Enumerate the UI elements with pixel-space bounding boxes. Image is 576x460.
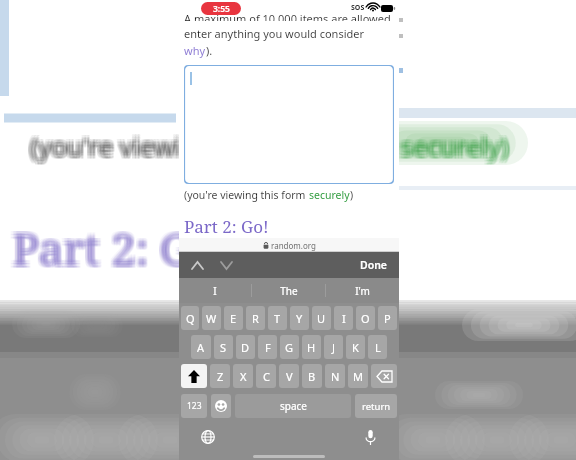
- staticText: P: [384, 311, 391, 326]
- staticText: Part 2: Go!: [12, 218, 232, 278]
- button[interactable]: K: [346, 335, 365, 359]
- button[interactable]: S: [214, 335, 233, 359]
- button[interactable]: Done: [357, 255, 391, 275]
- staticText: V: [286, 369, 293, 384]
- button[interactable]: I'm: [326, 278, 399, 303]
- staticText: enter anything you would consider confid: [184, 26, 394, 41]
- staticText: securely): [400, 130, 509, 165]
- staticText: 3:55: [213, 3, 230, 15]
- button[interactable]: N: [325, 364, 345, 388]
- button[interactable]: [184, 65, 394, 184]
- staticText: T: [274, 311, 281, 326]
- staticText: D: [241, 340, 250, 355]
- staticText: securely): [403, 128, 512, 163]
- button[interactable]: D: [236, 335, 255, 359]
- staticText: Part 2: Go!: [14, 218, 234, 278]
- staticText: Part 2: Go!: [184, 215, 269, 238]
- staticText: (you're viewing: [30, 125, 213, 160]
- button[interactable]: The: [252, 278, 325, 303]
- button[interactable]: V: [279, 364, 299, 388]
- staticText: securely): [399, 128, 508, 163]
- button[interactable]: L: [368, 335, 387, 359]
- staticText: (you're viewing: [27, 130, 210, 165]
- staticText: (you're viewing: [29, 130, 212, 165]
- staticText: securely): [402, 125, 511, 160]
- button[interactable]: G: [280, 335, 299, 359]
- button[interactable]: X: [233, 364, 253, 388]
- button[interactable]: Change keyboard: [197, 426, 219, 448]
- staticText: (you're viewing: [32, 128, 215, 163]
- staticText: securely): [397, 128, 506, 163]
- staticText: Part 2: Go!: [14, 217, 234, 277]
- staticText: securely): [402, 130, 511, 165]
- staticText: (you're viewing: [32, 131, 215, 166]
- button[interactable]: F: [258, 335, 277, 359]
- button[interactable]: I: [179, 278, 251, 303]
- button[interactable]: U: [312, 306, 331, 330]
- staticText: (you're viewing: [33, 131, 216, 166]
- staticText: (you're viewing: [32, 130, 215, 165]
- staticText: securely): [400, 127, 509, 162]
- staticText: Part 2: Go!: [11, 220, 231, 280]
- staticText: The: [280, 284, 298, 298]
- button[interactable]: O: [356, 306, 375, 330]
- staticText: B: [308, 369, 316, 384]
- button[interactable]: H: [302, 335, 321, 359]
- button[interactable]: Y: [290, 306, 309, 330]
- button[interactable]: P: [378, 306, 397, 330]
- staticText: (you're viewing: [29, 128, 212, 163]
- staticText: X: [240, 369, 247, 384]
- button[interactable]: Q: [181, 306, 199, 330]
- button[interactable]: space: [235, 394, 351, 418]
- button[interactable]: return: [355, 394, 397, 418]
- staticText: securely): [399, 131, 508, 166]
- staticText: (you're viewing: [32, 127, 215, 162]
- staticText: 123: [187, 400, 202, 412]
- staticText: SOS: [351, 3, 365, 13]
- staticText: Part 2: Go!: [11, 217, 231, 277]
- staticText: random.org: [271, 240, 316, 251]
- button[interactable]: Z: [210, 364, 230, 388]
- button[interactable]: Next field: [218, 257, 235, 274]
- staticText: Done: [360, 258, 388, 272]
- button[interactable]: A: [191, 335, 211, 359]
- staticText: Part 2: Go!: [11, 218, 231, 278]
- staticText: A: [197, 340, 205, 355]
- button[interactable]: J: [324, 335, 343, 359]
- staticText: securely): [400, 131, 509, 166]
- button[interactable]: Previous field: [189, 257, 206, 274]
- staticText: return: [362, 400, 391, 413]
- staticText: securely): [397, 130, 506, 165]
- button[interactable]: 123: [181, 394, 207, 418]
- button[interactable]: random.org: [179, 238, 399, 252]
- button[interactable]: Dictate: [359, 426, 381, 448]
- staticText: Part 2: Go!: [12, 221, 232, 281]
- button[interactable]: Backspace: [371, 364, 397, 388]
- staticText: J: [332, 340, 336, 355]
- button[interactable]: I: [334, 306, 353, 330]
- staticText: Part 2: Go!: [11, 215, 231, 275]
- staticText: why: [184, 43, 206, 58]
- staticText: N: [331, 369, 340, 384]
- staticText: Q: [186, 311, 195, 326]
- button[interactable]: T: [268, 306, 287, 330]
- staticText: (you're viewing: [27, 128, 210, 163]
- staticText: securely): [397, 127, 506, 162]
- staticText: securely): [399, 127, 508, 162]
- staticText: M: [353, 369, 363, 384]
- button[interactable]: R: [246, 306, 265, 330]
- button[interactable]: B: [302, 364, 322, 388]
- button[interactable]: E: [224, 306, 243, 330]
- button[interactable]: Emoji: [211, 394, 231, 418]
- staticText: Part 2: Go!: [9, 215, 229, 275]
- button[interactable]: W: [202, 306, 221, 330]
- button[interactable]: C: [256, 364, 276, 388]
- staticText: securely): [400, 125, 509, 160]
- staticText: (you're viewing: [27, 127, 210, 162]
- button[interactable]: Shift: [181, 364, 207, 388]
- staticText: Z: [217, 369, 224, 384]
- staticText: (you're viewing: [27, 125, 210, 160]
- staticText: (you're viewing: [33, 125, 216, 160]
- button[interactable]: M: [348, 364, 368, 388]
- staticText: U: [317, 311, 326, 326]
